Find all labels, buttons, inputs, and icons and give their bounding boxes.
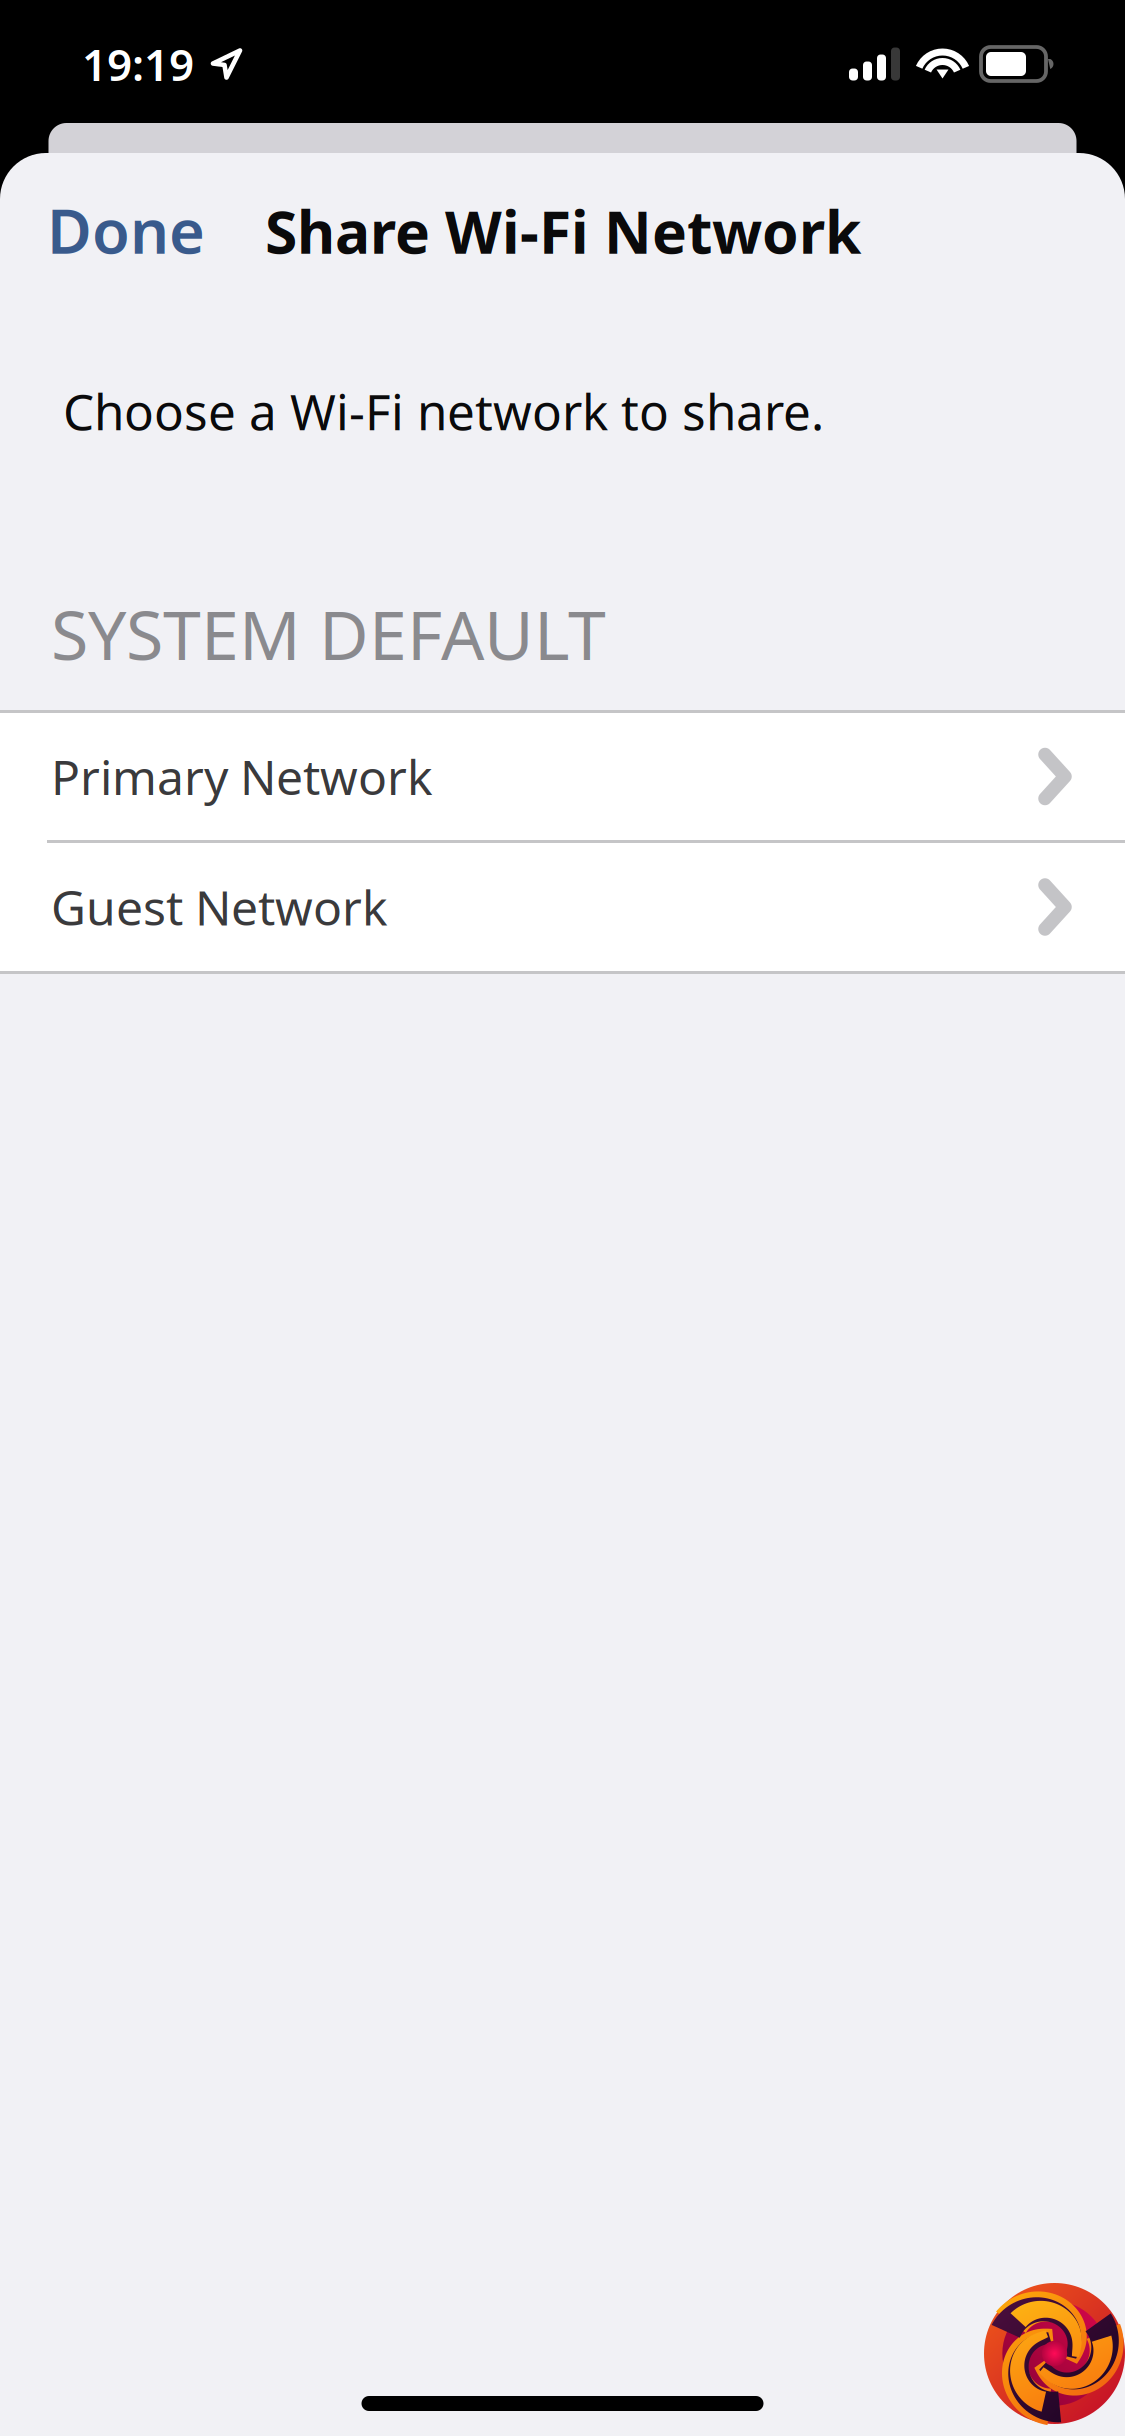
staticText: 19:19 xyxy=(82,35,194,93)
staticText: Guest Network xyxy=(51,875,388,939)
button[interactable]: Done xyxy=(0,167,229,293)
button[interactable]: Guest Network xyxy=(0,843,1125,971)
staticText: Done xyxy=(47,189,205,271)
button[interactable]: Primary Network xyxy=(0,713,1125,840)
staticText: SYSTEM DEFAULT xyxy=(51,588,606,679)
staticText: Choose a Wi-Fi network to share. xyxy=(63,378,824,444)
staticText: Share Wi-Fi Network xyxy=(265,192,861,270)
staticText: Primary Network xyxy=(51,745,433,808)
